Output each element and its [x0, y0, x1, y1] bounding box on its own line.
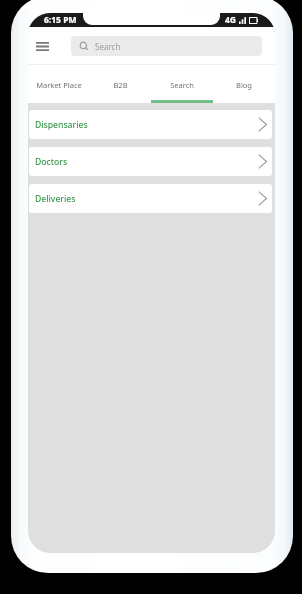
- staticText: Doctors: [35, 156, 68, 168]
- staticText: Dispensaries: [35, 119, 88, 131]
- button[interactable]: Dispensaries: [29, 110, 272, 139]
- button[interactable]: Doctors: [29, 147, 272, 176]
- staticText: Blog: [236, 80, 252, 90]
- button[interactable]: Deliveries: [29, 184, 272, 213]
- staticText: Deliveries: [35, 193, 76, 205]
- button[interactable]: Search: [71, 36, 262, 56]
- staticText: B2B: [113, 80, 128, 90]
- staticText: 4G: [225, 14, 237, 26]
- button[interactable]: Market Place: [28, 65, 89, 103]
- staticText: Search: [95, 41, 121, 52]
- button[interactable]: Blog: [213, 65, 275, 103]
- staticText: Search: [170, 80, 194, 90]
- button[interactable]: Open navigation menu: [29, 33, 56, 60]
- staticText: 6:15 PM: [44, 14, 77, 26]
- button[interactable]: Search: [151, 65, 213, 103]
- button[interactable]: B2B: [89, 65, 151, 103]
- staticText: Market Place: [36, 80, 82, 90]
